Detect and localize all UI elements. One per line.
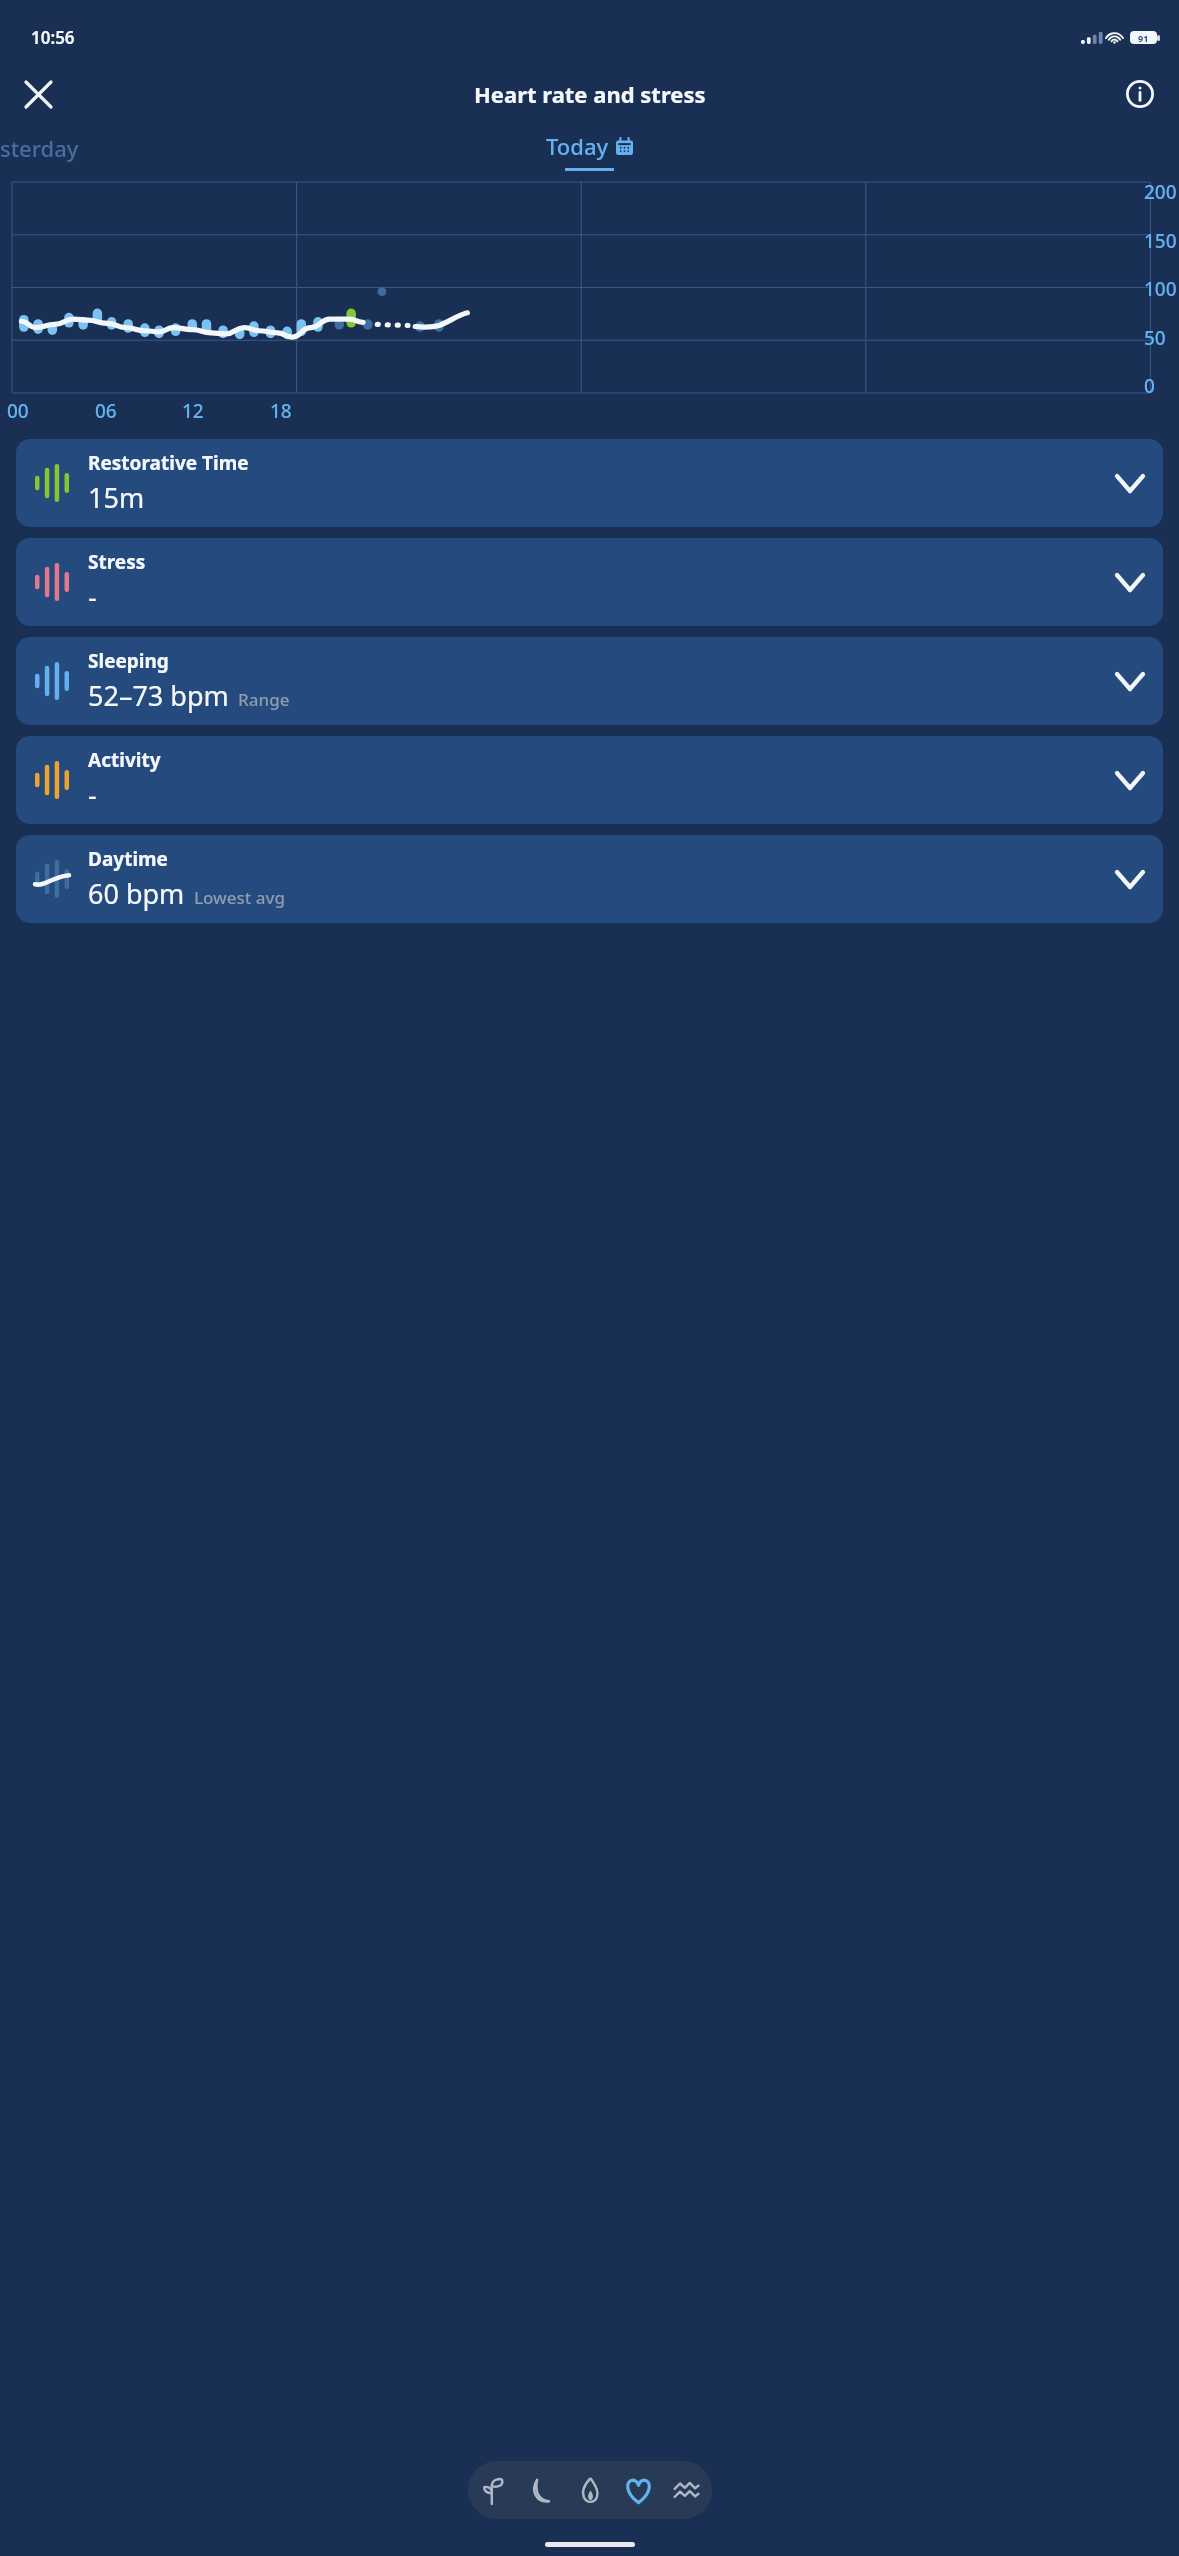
button[interactable]: Heart rate (616, 2461, 660, 2519)
button[interactable]: Today (546, 131, 633, 171)
button[interactable]: Close (14, 70, 62, 118)
button[interactable]: Trends (664, 2461, 708, 2519)
staticText: Lowest avg (194, 886, 286, 909)
button[interactable]: Body composition (472, 2461, 516, 2519)
staticText: 91 (1138, 32, 1149, 44)
button[interactable]: Sleep (520, 2461, 564, 2519)
staticText: Restorative Time (88, 450, 249, 476)
staticText: Activity (88, 747, 161, 773)
staticText: 18 (270, 398, 292, 424)
staticText: Sleeping (88, 648, 169, 674)
staticText: - (88, 776, 97, 813)
staticText: - (88, 578, 97, 615)
staticText: 50 (1144, 325, 1166, 351)
staticText: 00 (7, 398, 29, 424)
staticText: 15m (88, 479, 145, 516)
staticText: 150 (1144, 228, 1177, 254)
staticText: Daytime (88, 846, 168, 872)
staticText: Stress (88, 549, 146, 575)
button[interactable]: Restorative Time (16, 439, 1163, 527)
button[interactable]: Activity (16, 736, 1163, 824)
staticText: Heart rate and stress (474, 79, 706, 109)
staticText: 100 (1144, 276, 1177, 302)
staticText: 200 (1144, 179, 1177, 205)
staticText: Range (238, 688, 290, 711)
staticText: 06 (95, 398, 117, 424)
staticText: 10:56 (31, 26, 75, 49)
button[interactable]: Sleeping (16, 637, 1163, 725)
staticText: 12 (182, 398, 204, 424)
button[interactable]: Information (1116, 70, 1164, 118)
button[interactable]: sterday (0, 133, 79, 163)
staticText: 52–73 bpm (88, 677, 229, 714)
staticText: 60 bpm (88, 875, 185, 912)
button[interactable]: Energy (568, 2461, 612, 2519)
button[interactable]: Stress (16, 538, 1163, 626)
button[interactable]: Daytime (16, 835, 1163, 923)
staticText: Today (546, 131, 609, 161)
staticText: 0 (1144, 373, 1155, 399)
